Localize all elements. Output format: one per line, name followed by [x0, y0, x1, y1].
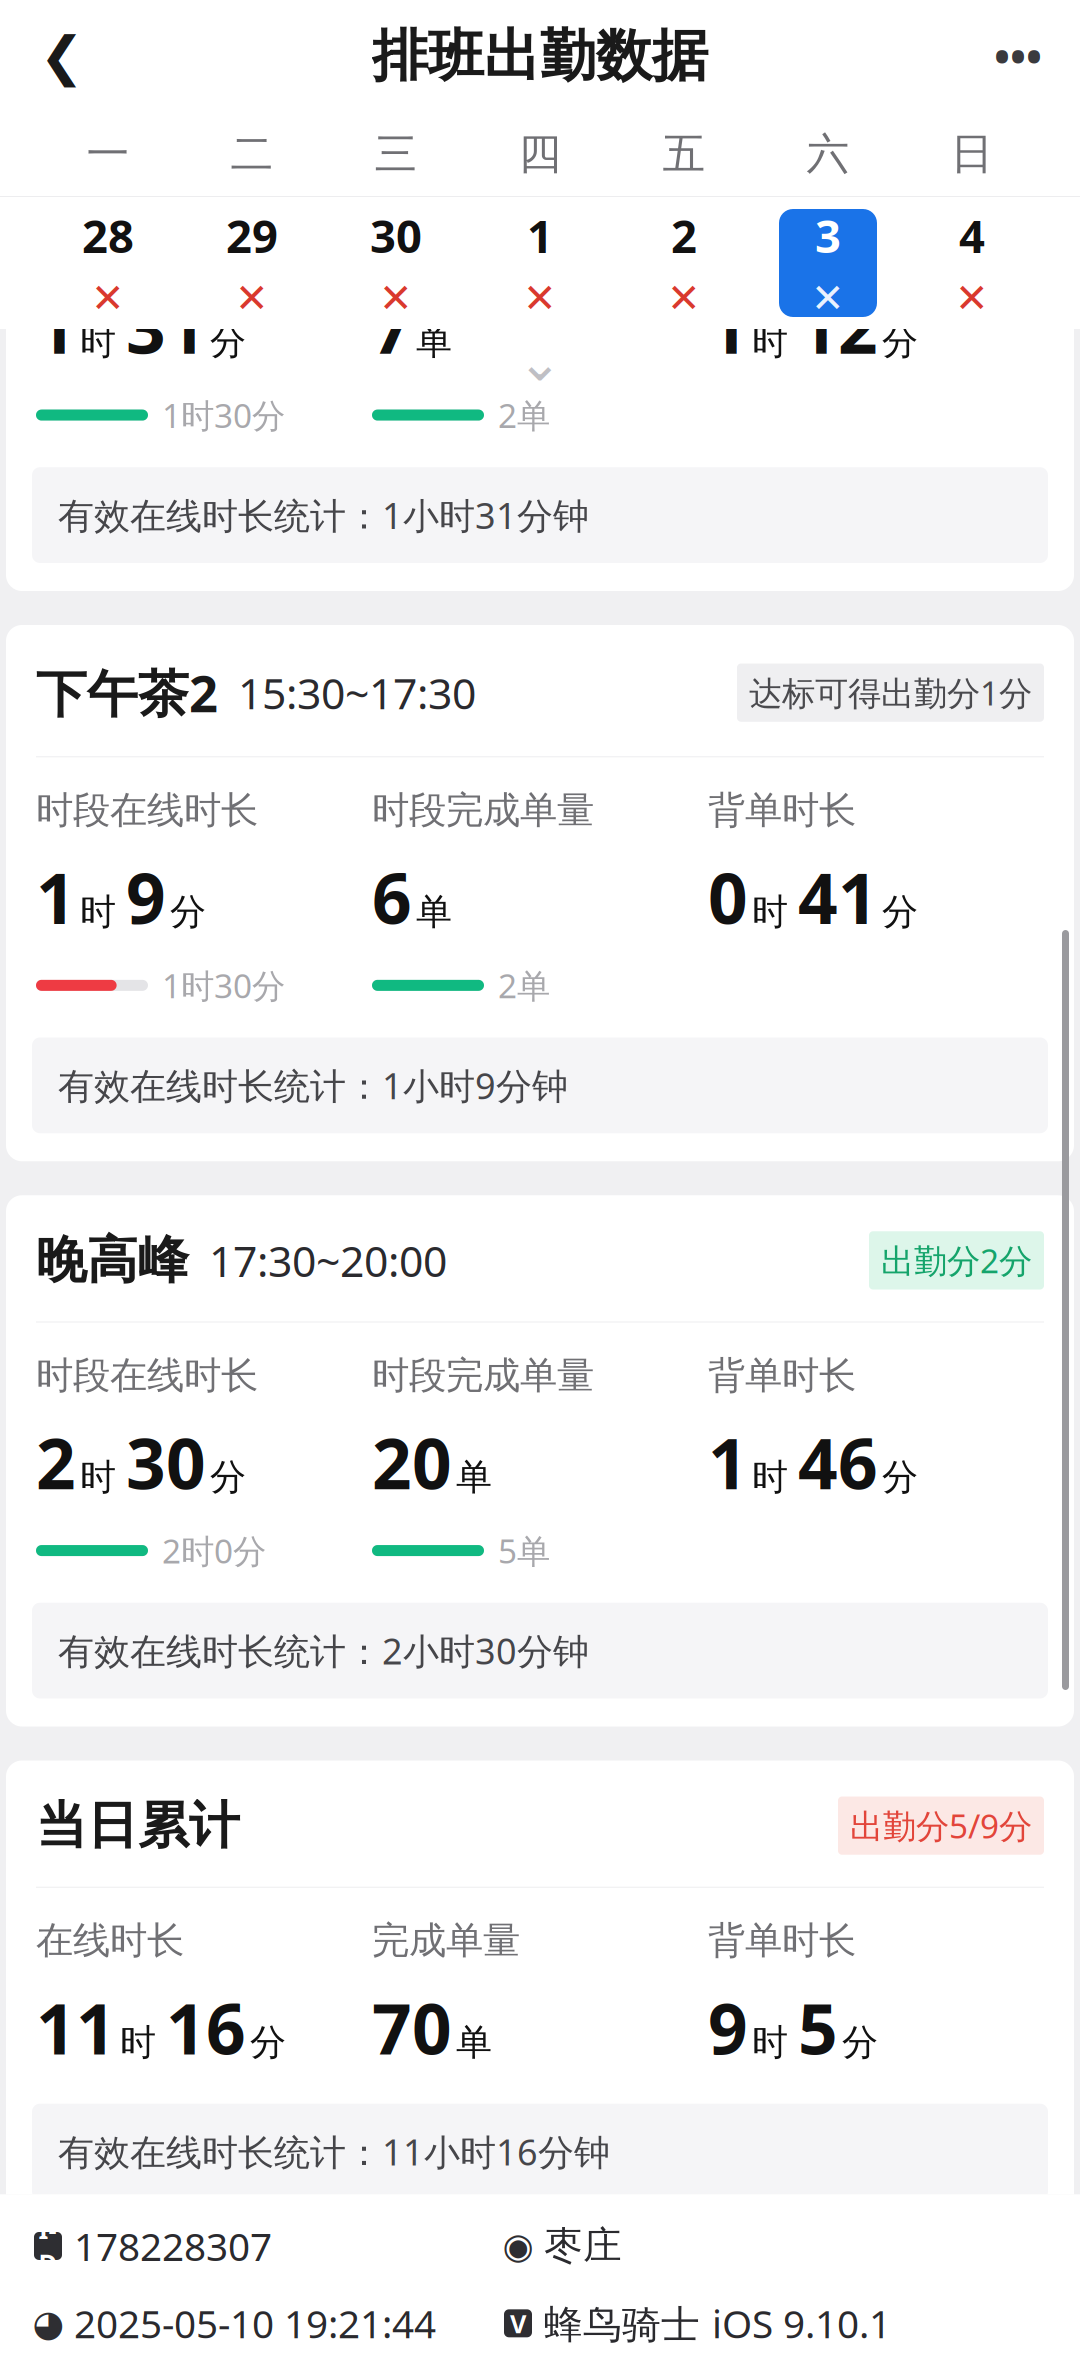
staticText: 时段完成单量 — [372, 787, 594, 833]
staticText: 2时0分 — [162, 1528, 266, 1573]
staticText: 1 — [708, 1416, 748, 1508]
button[interactable]: 30 — [347, 209, 445, 317]
staticText: 背单时长 — [708, 1352, 856, 1398]
staticText: ✕ — [667, 275, 701, 321]
button[interactable]: Expand calendar — [480, 336, 600, 388]
staticText: V — [510, 2306, 526, 2340]
staticText: ••• — [994, 28, 1042, 84]
staticText: 1 — [527, 205, 553, 265]
staticText: 分 — [882, 1455, 918, 1499]
staticText: 2单 — [498, 963, 550, 1007]
staticText: ✕ — [379, 275, 413, 321]
button[interactable]: 3 — [779, 209, 877, 317]
staticText: 单 — [456, 2020, 492, 2065]
staticText: 晚高峰 — [36, 1229, 189, 1291]
staticText: 46 — [798, 1416, 878, 1508]
staticText: 20 — [372, 1416, 452, 1508]
staticText: 0 — [708, 851, 748, 943]
staticText: 日 — [950, 128, 993, 180]
staticText: 分 — [842, 2020, 878, 2065]
staticText: 1 — [36, 851, 76, 943]
staticText: 达标可得出勤分1分 — [749, 670, 1032, 715]
staticText: 4 — [959, 205, 985, 265]
staticText: ❮ — [39, 26, 84, 86]
staticText: 分 — [882, 890, 918, 934]
staticText: 时 — [752, 1455, 788, 1499]
staticText: 出勤分2分 — [881, 1238, 1032, 1283]
staticText: 2 — [671, 205, 697, 265]
staticText: 6 — [372, 851, 412, 943]
staticText: 时 — [120, 2020, 156, 2065]
staticText: 背单时长 — [708, 787, 856, 833]
staticText: 分 — [170, 890, 206, 934]
staticText: 完成单量 — [372, 1918, 520, 1964]
staticText: 时 — [752, 2020, 788, 2065]
button[interactable]: 28 — [59, 209, 157, 317]
staticText: 70 — [372, 1982, 452, 2074]
button[interactable]: Back — [14, 8, 110, 104]
staticText: ID — [38, 2212, 57, 2280]
staticText: 178228307 — [74, 2220, 272, 2272]
staticText: 时段在线时长 — [36, 1352, 258, 1398]
staticText: 单 — [416, 890, 452, 934]
staticText: 30 — [370, 205, 422, 265]
staticText: ◕ — [32, 2303, 63, 2344]
staticText: 9 — [708, 1982, 748, 2074]
staticText: 1时30分 — [162, 393, 285, 437]
staticText: 时段完成单量 — [372, 1352, 594, 1398]
staticText: 时 — [752, 890, 788, 934]
staticText: 五 — [662, 128, 705, 180]
button[interactable]: 1 — [491, 209, 589, 317]
staticText: 16 — [166, 1982, 246, 2074]
button[interactable]: More options — [970, 8, 1066, 104]
staticText: 时 — [80, 320, 116, 364]
staticText: 31 — [126, 281, 206, 373]
staticText: 单 — [416, 320, 452, 364]
button[interactable]: 4 — [923, 209, 1021, 317]
staticText: ✕ — [91, 275, 125, 321]
staticText: 41 — [798, 851, 878, 943]
staticText: 5单 — [498, 1528, 550, 1573]
staticText: 蜂鸟骑士 iOS 9.10.1 — [544, 2298, 891, 2349]
staticText: 六 — [806, 128, 849, 180]
staticText: 2 — [36, 1416, 76, 1508]
staticText: 枣庄 — [544, 2222, 622, 2270]
staticText: 有效在线时长统计：1小时31分钟 — [58, 491, 589, 539]
staticText: 9 — [126, 851, 166, 943]
staticText: 11 — [36, 1982, 116, 2074]
staticText: ✕ — [235, 275, 269, 321]
staticText: ✕ — [955, 275, 989, 321]
staticText: 一 — [86, 128, 129, 180]
staticText: 12 — [798, 281, 878, 373]
staticText: 三 — [374, 128, 417, 180]
staticText: 四 — [518, 128, 561, 180]
staticText: 下午茶2 — [36, 659, 218, 726]
staticText: ◉ — [502, 2225, 533, 2266]
staticText: 1时30分 — [162, 963, 285, 1007]
staticText: 时 — [80, 1455, 116, 1499]
staticText: 30 — [126, 1416, 206, 1508]
staticText: 有效在线时长统计：2小时30分钟 — [58, 1627, 589, 1674]
staticText: ✕ — [811, 275, 845, 321]
staticText: 7 — [372, 281, 412, 373]
staticText: 时段在线时长 — [36, 787, 258, 833]
staticText: 有效在线时长统计：11小时16分钟 — [58, 2128, 610, 2175]
staticText: 15:30~17:30 — [238, 664, 476, 721]
staticText: 当日累计 — [36, 1794, 240, 1857]
staticText: 分 — [210, 320, 246, 364]
staticText: 17:30~20:00 — [209, 1232, 447, 1289]
staticText: 排班出勤数据 — [372, 22, 708, 90]
staticText: 28 — [82, 205, 134, 265]
button[interactable]: 2 — [635, 209, 733, 317]
staticText: 时 — [752, 320, 788, 364]
staticText: 时 — [80, 890, 116, 934]
staticText: 5 — [798, 1982, 838, 2074]
button[interactable]: 29 — [203, 209, 301, 317]
staticText: ✕ — [523, 275, 557, 321]
staticText: 出勤分5/9分 — [850, 1803, 1032, 1848]
staticText: 单 — [456, 1455, 492, 1499]
staticText: ⌄ — [517, 332, 562, 392]
staticText: 在线时长 — [36, 1918, 184, 1964]
staticText: 背单时长 — [708, 1918, 856, 1964]
staticText: 分 — [882, 320, 918, 364]
